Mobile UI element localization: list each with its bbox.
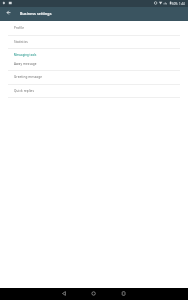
button[interactable]: Away message <box>0 57 188 70</box>
staticText: 60% <box>172 2 178 6</box>
button[interactable]: Home <box>84 288 104 300</box>
staticText: 1:44 <box>179 2 185 6</box>
button[interactable]: Back <box>2 8 15 20</box>
staticText: Greeting message <box>14 75 42 79</box>
button[interactable]: Recents <box>114 288 134 300</box>
staticText: Quick replies <box>14 89 35 93</box>
staticText: Statistics <box>14 40 28 44</box>
staticText: Profile <box>14 26 25 30</box>
staticText: Business settings <box>20 11 52 16</box>
button[interactable]: Greeting message <box>0 70 188 83</box>
staticText: Away message <box>14 62 37 66</box>
button[interactable]: Quick replies <box>0 84 188 97</box>
staticText: Messaging tools <box>14 53 37 57</box>
button[interactable]: Back <box>54 288 74 300</box>
button[interactable]: Statistics <box>0 35 188 48</box>
button[interactable]: Profile <box>0 21 188 34</box>
